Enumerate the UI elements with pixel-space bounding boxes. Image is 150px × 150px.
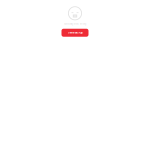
button[interactable]: Download App bbox=[61, 29, 88, 37]
staticText: Download App bbox=[67, 31, 82, 34]
staticText: Something went wrong bbox=[64, 23, 86, 25]
